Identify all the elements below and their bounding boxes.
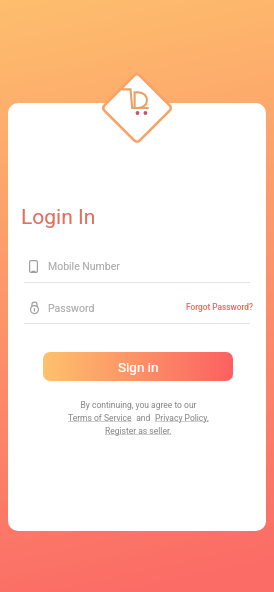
staticText: Mobile Number (48, 260, 120, 272)
button[interactable]: Sign in (43, 352, 233, 381)
button[interactable]: Privacy Policy, (155, 413, 209, 423)
other: Mobile Number (29, 260, 38, 273)
staticText: Terms of Service (68, 413, 132, 423)
other: App logo (122, 84, 152, 114)
staticText: Password (48, 302, 95, 314)
staticText: By continuing, you agree to our (21, 400, 256, 410)
staticText: Privacy Policy, (155, 413, 209, 423)
button[interactable]: Terms of Service (68, 413, 132, 423)
other: Password (29, 301, 40, 314)
staticText: Sign in (118, 359, 159, 375)
staticText: and (132, 413, 155, 423)
button[interactable]: Password (21, 301, 186, 314)
staticText: Login In (21, 205, 96, 230)
staticText: Forgot Password? (186, 302, 253, 312)
button[interactable]: Forgot Password? (186, 302, 253, 312)
staticText: Register as seller. (105, 426, 172, 436)
button[interactable]: Register as seller. (105, 426, 172, 436)
button[interactable]: Mobile Number (21, 258, 256, 274)
